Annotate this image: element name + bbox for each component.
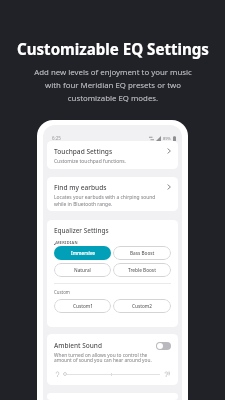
staticText: Custom1 [73, 303, 93, 309]
staticText: Custom2 [132, 303, 152, 309]
staticText: Custom [54, 289, 70, 295]
staticText: Bass Boost [130, 250, 155, 256]
staticText: Touchpad Settings [54, 147, 113, 156]
staticText: Customizable EQ Settings [17, 39, 209, 60]
button[interactable]: Ambient sound toggle [156, 342, 171, 350]
staticText: 6:25 [52, 135, 61, 141]
button[interactable]: Find my earbuds [47, 177, 178, 211]
staticText: Equalizer Settings [54, 226, 109, 235]
staticText: Natural [74, 267, 91, 273]
staticText: Find my earbuds [54, 183, 107, 192]
staticText: Treble Boost [128, 267, 156, 273]
button[interactable]: Bass Boost [113, 246, 171, 260]
staticText: Ambient Sound [54, 341, 102, 350]
staticText: 89% [163, 136, 171, 141]
button[interactable]: Touchpad Settings [47, 141, 178, 169]
button[interactable]: Custom2 [113, 299, 171, 313]
button[interactable]: Natural [54, 263, 111, 277]
staticText: Immersive [71, 250, 95, 256]
button[interactable]: Custom1 [54, 299, 111, 313]
staticText: Locates your earbuds with a chirping sou… [54, 194, 156, 207]
staticText: Add new levels of enjoyment to your musi… [34, 67, 192, 104]
button[interactable]: Immersive [54, 246, 111, 260]
button[interactable]: Treble Boost [113, 263, 171, 277]
staticText: Customize touchpad functions. [54, 158, 126, 165]
staticText: MERIDIAN [56, 240, 78, 245]
staticText: When turned on allows you to control the… [54, 352, 152, 364]
